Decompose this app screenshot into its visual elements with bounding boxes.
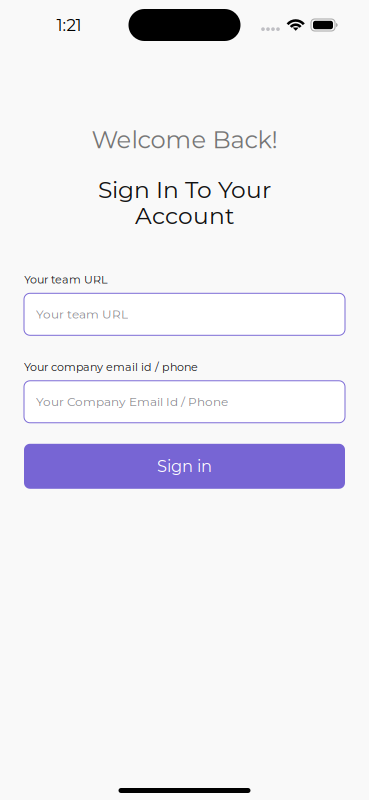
button[interactable]: Your team URL bbox=[24, 293, 345, 335]
staticText: Welcome Back! bbox=[91, 125, 277, 154]
staticText: Your company email id / phone bbox=[24, 360, 198, 374]
staticText: Your team URL bbox=[24, 273, 108, 286]
button[interactable]: Your Company Email Id / Phone bbox=[24, 381, 345, 423]
staticText: 1:21 bbox=[56, 15, 81, 35]
staticText: Sign in bbox=[157, 456, 212, 476]
staticText: Your team URL bbox=[36, 307, 128, 322]
button[interactable]: Sign in bbox=[24, 444, 345, 489]
staticText: Sign In To Your bbox=[98, 175, 271, 204]
staticText: Your Company Email Id / Phone bbox=[36, 394, 228, 409]
staticText: Account bbox=[135, 201, 234, 230]
